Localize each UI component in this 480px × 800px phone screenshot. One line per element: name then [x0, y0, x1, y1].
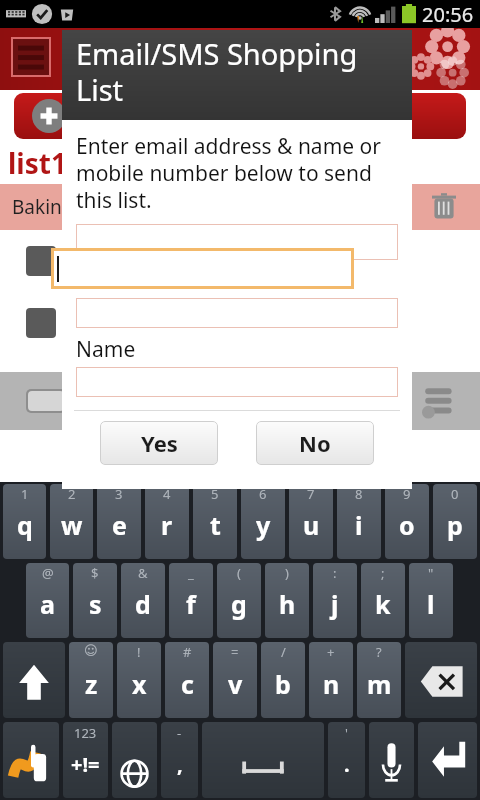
staticText: Name [76, 335, 136, 364]
button[interactable] [14, 93, 466, 139]
button[interactable]: No [256, 421, 374, 465]
button[interactable]: 3 [97, 484, 141, 559]
button[interactable]: 6 [241, 484, 285, 559]
button[interactable]: 1 [3, 484, 46, 559]
staticText: $ [91, 564, 99, 582]
staticText: = [231, 643, 239, 661]
button[interactable]: ) [265, 563, 309, 638]
staticText: j [331, 587, 339, 621]
staticText: ( [237, 564, 241, 582]
button[interactable]: Swipe input [3, 722, 59, 798]
staticText: l [427, 587, 435, 621]
button[interactable]: Yes [100, 421, 218, 465]
staticText: Baking [12, 194, 74, 220]
staticText: 8 [355, 485, 363, 503]
button[interactable]: + [309, 642, 353, 718]
staticText: # [183, 643, 192, 661]
staticText: 4 [163, 485, 171, 503]
staticText: / [281, 643, 286, 661]
staticText: . [344, 751, 350, 778]
button[interactable]: 0 [433, 484, 477, 559]
button[interactable]: = [213, 642, 257, 718]
button[interactable]: 5 [193, 484, 237, 559]
button[interactable] [76, 367, 398, 397]
button[interactable]: list1 [0, 142, 480, 184]
button[interactable]: 7 [289, 484, 333, 559]
button[interactable]: : [313, 563, 357, 638]
button[interactable]: Shift [3, 642, 65, 718]
staticText: 2 [68, 485, 76, 503]
button[interactable]: ! [117, 642, 161, 718]
staticText: 9 [403, 485, 411, 503]
staticText: + [327, 643, 335, 661]
staticText: b [275, 667, 291, 701]
staticText: - [177, 724, 182, 742]
button[interactable]: - [161, 722, 198, 798]
staticText: ) [285, 564, 289, 582]
staticText: : [333, 564, 337, 582]
staticText: " [428, 564, 434, 582]
button[interactable]: Enter [418, 722, 477, 798]
button[interactable]: ( [217, 563, 261, 638]
staticText: Email/SMS Shopping List [76, 34, 358, 110]
button[interactable] [0, 230, 480, 292]
button[interactable]: Space [202, 722, 324, 798]
staticText: +!= [71, 751, 100, 778]
staticText: k [375, 587, 391, 621]
staticText: Enter email address & name or mobile num… [76, 132, 398, 214]
button[interactable]: Menu [0, 28, 480, 90]
button[interactable]: ' [328, 722, 365, 798]
button[interactable]: ; [361, 563, 405, 638]
button[interactable]: Voice input [369, 722, 414, 798]
staticText: a [40, 587, 55, 621]
staticText: 6 [259, 485, 267, 503]
staticText: ; [381, 564, 385, 582]
button[interactable]: Language [112, 722, 157, 798]
button[interactable]: 2 [50, 484, 93, 559]
button[interactable] [0, 292, 480, 354]
staticText: n [323, 667, 340, 701]
staticText: m [367, 667, 392, 701]
button[interactable] [76, 298, 398, 328]
button[interactable]: ? [357, 642, 401, 718]
button[interactable]: Backspace [405, 642, 477, 718]
button[interactable]: _ [169, 563, 213, 638]
button[interactable]: " [409, 563, 453, 638]
staticText: f [186, 587, 196, 621]
staticText: & [138, 564, 148, 582]
button[interactable]: / [261, 642, 305, 718]
button[interactable]: & [121, 563, 165, 638]
staticText: h [279, 587, 296, 621]
button[interactable]: $ [73, 563, 117, 638]
button[interactable] [76, 224, 398, 260]
button[interactable]: # [165, 642, 209, 718]
staticText: q [17, 508, 33, 542]
staticText: w [61, 508, 83, 542]
staticText: , [177, 751, 183, 778]
button[interactable]: 123 [63, 722, 108, 798]
button[interactable] [51, 248, 354, 289]
staticText: e [112, 508, 127, 542]
staticText: c [181, 667, 194, 701]
staticText: Yes [141, 428, 178, 458]
staticText: @ [42, 564, 54, 582]
staticText: ' [345, 724, 348, 742]
button[interactable]: 8 [337, 484, 381, 559]
button[interactable]: 4 [145, 484, 189, 559]
staticText: list1 [8, 144, 67, 182]
staticText: y [256, 508, 271, 542]
button[interactable]: @ [26, 563, 69, 638]
staticText: p [447, 508, 463, 542]
staticText: t [210, 508, 221, 542]
staticText: g [231, 587, 247, 621]
staticText: 0 [451, 485, 459, 503]
button[interactable]: ☺ [69, 642, 113, 718]
button[interactable]: Delete [426, 189, 462, 225]
staticText: v [228, 667, 243, 701]
button[interactable]: Menu [8, 34, 54, 80]
staticText: 3 [115, 485, 123, 503]
button[interactable]: 9 [385, 484, 429, 559]
staticText: No [299, 428, 331, 458]
staticText: 7 [307, 485, 315, 503]
button[interactable]: Baking [0, 184, 480, 230]
